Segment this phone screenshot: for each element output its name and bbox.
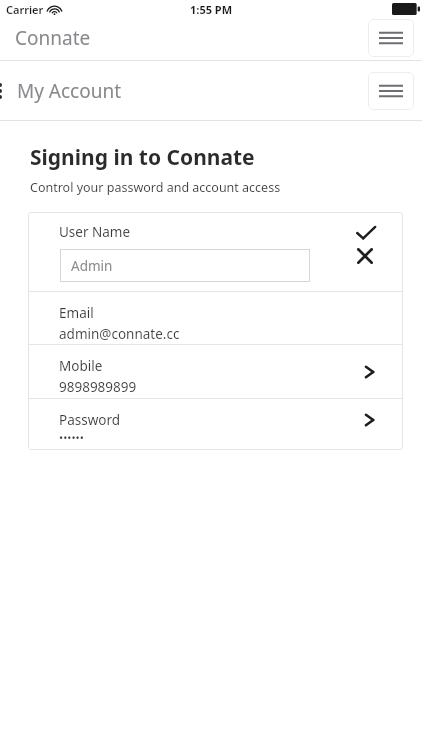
button[interactable]: More options (0, 71, 8, 111)
staticText: Mobile (59, 357, 103, 375)
button[interactable]: Menu (368, 19, 414, 57)
button[interactable]: Cancel (351, 244, 379, 268)
button[interactable]: User Name (28, 212, 403, 291)
button[interactable]: Password (28, 399, 403, 450)
button[interactable]: Admin (60, 249, 310, 282)
button[interactable]: Mobile (28, 345, 403, 398)
staticText: admin@connate.cc (59, 325, 180, 343)
staticText: My Account (17, 78, 122, 104)
staticText: •••••• (59, 430, 84, 445)
staticText: 9898989899 (59, 378, 137, 396)
button[interactable]: Confirm (351, 221, 381, 245)
staticText: Carrier (6, 2, 44, 17)
staticText: Admin (71, 257, 113, 275)
staticText: 1:55 PM (190, 2, 233, 17)
staticText: User Name (59, 223, 131, 241)
staticText: Email (59, 304, 94, 322)
staticText: Signing in to Connate (30, 143, 255, 172)
button[interactable]: Email (28, 292, 403, 344)
staticText: Password (59, 411, 121, 429)
staticText: Control your password and account access (30, 179, 281, 196)
button[interactable]: Navigation menu (368, 72, 414, 110)
staticText: Connate (15, 25, 91, 51)
